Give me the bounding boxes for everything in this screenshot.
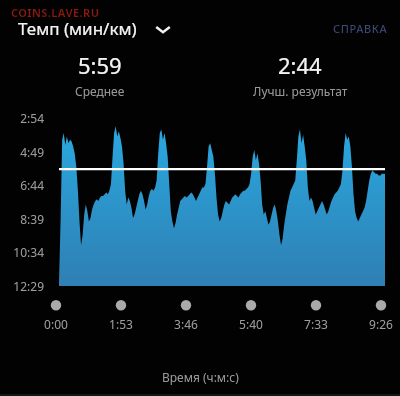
staticText: 3:46 (164, 316, 208, 332)
staticText: Среднее (75, 83, 125, 99)
staticText: 8:39 (0, 211, 44, 227)
staticText: 12:29 (0, 278, 44, 294)
staticText: Время (ч:м:с) (162, 369, 239, 385)
button[interactable]: Темп (мин/км) (18, 17, 173, 40)
button[interactable]: СПРАВКА (321, 18, 400, 39)
staticText: Лучш. результат (253, 83, 348, 99)
staticText: 5:59 (78, 50, 122, 80)
staticText: 10:34 (0, 244, 44, 260)
staticText: 1:53 (99, 316, 143, 332)
staticText: 2:44 (278, 50, 322, 80)
staticText: 4:49 (0, 144, 44, 160)
button[interactable]: 2:44 (200, 50, 400, 99)
staticText: 9:26 (359, 316, 400, 332)
button[interactable]: 5:59 (0, 50, 200, 99)
staticText: 5:40 (229, 316, 273, 332)
staticText: 6:44 (0, 177, 44, 193)
staticText: СПРАВКА (333, 21, 388, 36)
staticText: 2:54 (0, 110, 44, 126)
staticText: 0:00 (34, 316, 78, 332)
staticText: COINS.LAVE.RU (11, 5, 100, 20)
staticText: 7:33 (294, 316, 338, 332)
staticText: Темп (мин/км) (18, 17, 137, 40)
